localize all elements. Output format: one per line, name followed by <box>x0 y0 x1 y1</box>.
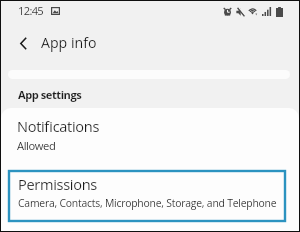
staticText: Camera, Contacts, Microphone, Storage, a… <box>18 196 277 210</box>
staticText: App info <box>41 33 97 52</box>
staticText: Permissions <box>18 174 97 194</box>
button[interactable]: Permissions <box>9 171 285 221</box>
staticText: Notifications <box>17 116 100 136</box>
button[interactable]: Notifications <box>1 109 299 157</box>
button[interactable]: Back <box>12 32 34 54</box>
staticText: Allowed <box>17 138 56 153</box>
staticText: App settings <box>18 87 82 102</box>
staticText: 12:45 <box>18 3 44 18</box>
